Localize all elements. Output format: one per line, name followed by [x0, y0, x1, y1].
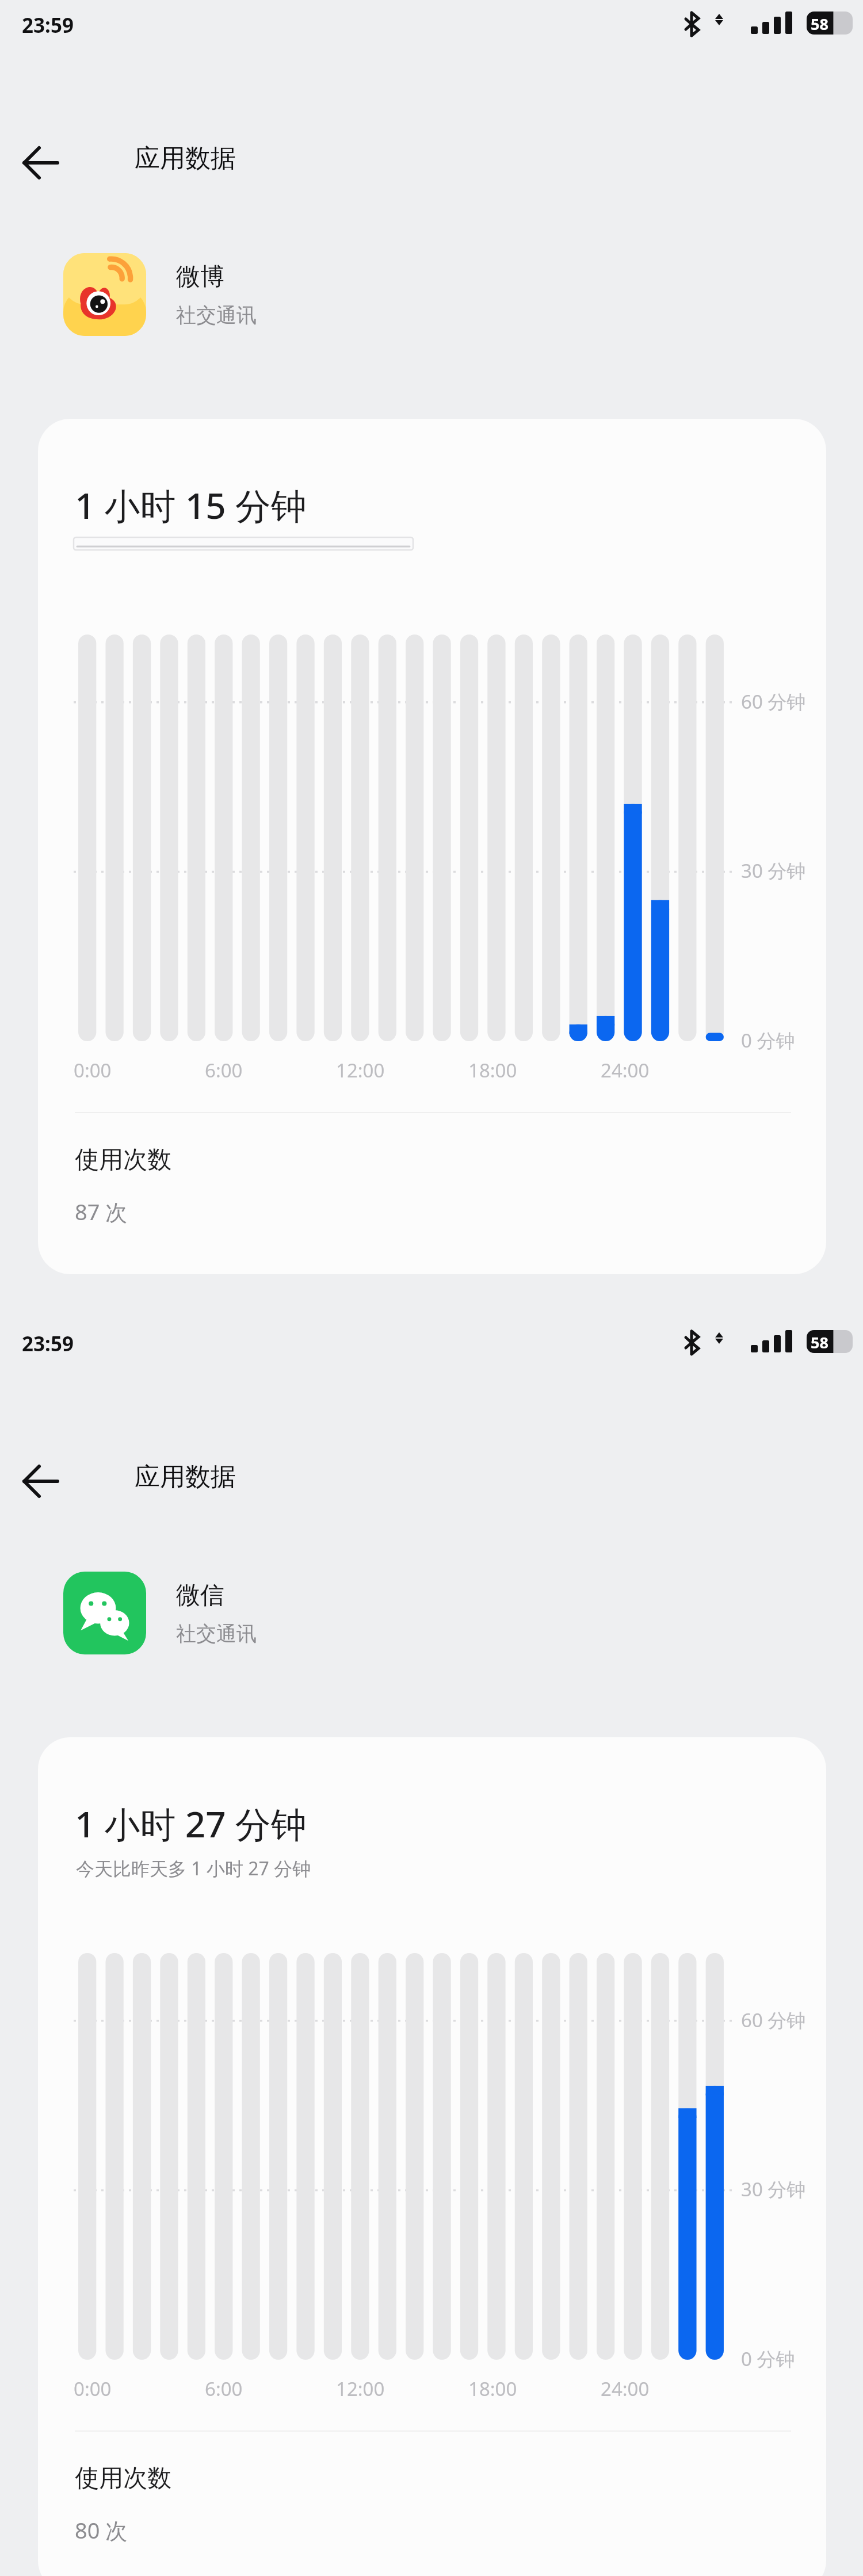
staticText: 58 — [811, 1332, 828, 1353]
staticText: 24:00 — [601, 1057, 650, 1083]
staticText: 12:00 — [336, 1057, 385, 1083]
button[interactable]: 返回 — [10, 1450, 74, 1513]
button[interactable]: 微博 — [63, 249, 420, 341]
staticText: 应用数据 — [135, 1461, 236, 1493]
staticText: 87 次 — [75, 1197, 128, 1226]
staticText: 0 分钟 — [741, 2346, 795, 2372]
staticText: 使用次数 — [75, 2463, 171, 2494]
staticText: 30 分钟 — [741, 858, 806, 884]
staticText: 6:00 — [205, 2376, 243, 2402]
button[interactable]: 微信 — [63, 1567, 420, 1659]
staticText: 微博 — [176, 262, 224, 292]
staticText: 58 — [811, 13, 828, 35]
button[interactable]: 1 小时 27 分钟 — [38, 1737, 826, 2576]
staticText: 1 小时 15 分钟 — [75, 481, 307, 530]
staticText: 12:00 — [336, 2376, 385, 2402]
staticText: 0:00 — [74, 2376, 112, 2402]
staticText: 60 分钟 — [741, 689, 806, 714]
staticText: 30 分钟 — [741, 2176, 806, 2202]
staticText: 23:59 — [22, 1330, 74, 1358]
staticText: 6:00 — [205, 1057, 243, 1083]
staticText: 24:00 — [601, 2376, 650, 2402]
staticText: 0:00 — [74, 1057, 112, 1083]
staticText: 1 小时 27 分钟 — [75, 1799, 307, 1848]
button[interactable]: 返回 — [10, 131, 74, 194]
staticText: 社交通讯 — [176, 303, 257, 328]
staticText: 应用数据 — [135, 143, 236, 174]
staticText: 18:00 — [468, 2376, 517, 2402]
staticText: 使用次数 — [75, 1145, 171, 1175]
staticText: 18:00 — [468, 1057, 517, 1083]
staticText: 社交通讯 — [176, 1621, 257, 1646]
staticText: 23:59 — [22, 12, 74, 39]
staticText: 80 次 — [75, 2515, 128, 2545]
staticText: 0 分钟 — [741, 1027, 795, 1053]
staticText: 今天比昨天多 1 小时 27 分钟 — [76, 1856, 311, 1881]
button[interactable]: 1 小时 15 分钟 — [38, 419, 826, 1274]
staticText: 微信 — [176, 1580, 224, 1611]
staticText: 60 分钟 — [741, 2007, 806, 2033]
